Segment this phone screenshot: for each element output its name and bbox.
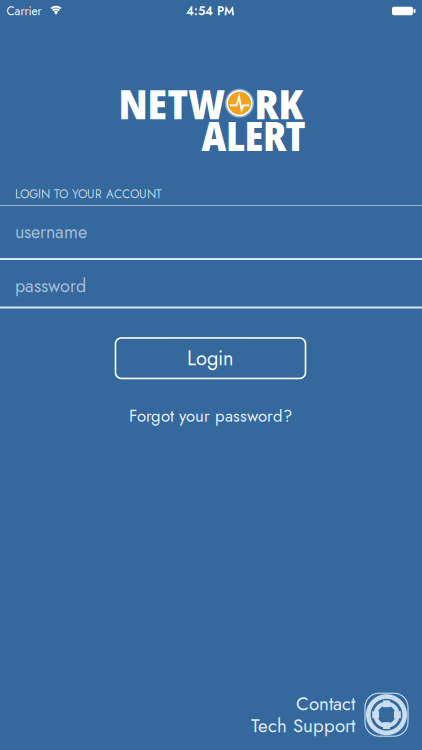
staticText: 4:54 PM: [186, 2, 234, 20]
staticText: username: [15, 219, 87, 245]
staticText: Contact: [296, 690, 355, 717]
button[interactable]: Forgot your password?: [129, 404, 292, 428]
button[interactable]: password: [0, 0, 422, 750]
button[interactable]: username: [0, 0, 422, 750]
staticText: ALERT: [201, 108, 305, 163]
staticText: Carrier: [6, 2, 41, 20]
staticText: Forgot your password?: [129, 404, 292, 428]
staticText: Login: [187, 344, 234, 373]
button[interactable]: Login: [115, 338, 305, 378]
staticText: LOGIN TO YOUR ACCOUNT: [15, 185, 162, 203]
staticText: NETW: [118, 75, 224, 131]
staticText: Tech Support: [251, 712, 355, 739]
staticText: RK: [254, 75, 302, 131]
staticText: password: [15, 273, 86, 299]
button[interactable]: Contact: [251, 690, 410, 739]
